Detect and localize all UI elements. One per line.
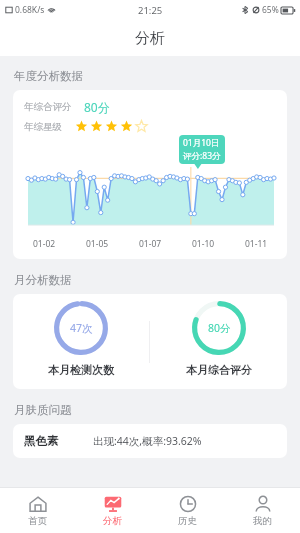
staticText: 黑色素 [24, 434, 59, 448]
staticText: 出现:44次,概率:93.62% [93, 434, 202, 448]
button[interactable]: 分析 [75, 488, 150, 533]
staticText: 月分析数据 [14, 273, 72, 287]
other: 历史 [179, 495, 197, 513]
staticText: 01-10 [192, 238, 215, 250]
staticText: 历史 [178, 515, 197, 527]
staticText: 评分:83分 [183, 150, 221, 162]
staticText: 01-07 [139, 238, 162, 250]
staticText: 21:25 [138, 4, 163, 17]
staticText: 80分 [84, 99, 110, 115]
other: 我的 [254, 495, 272, 513]
staticText: 月肤质问题 [14, 403, 72, 417]
staticText: 分析 [135, 29, 165, 48]
staticText: 01月10日 [183, 137, 220, 149]
other: 分析 [104, 495, 122, 513]
staticText: 年度分析数据 [14, 69, 83, 83]
staticText: 本月综合评分 [186, 363, 252, 377]
other: 首页 [29, 495, 47, 513]
button[interactable]: 历史 [150, 488, 225, 533]
staticText: 年综星级 [24, 121, 62, 133]
staticText: 80分 [208, 321, 231, 335]
staticText: 65% [262, 4, 279, 16]
button[interactable]: 首页 [0, 488, 75, 533]
button[interactable]: 黑色素 [13, 424, 287, 458]
staticText: 我的 [253, 515, 272, 527]
staticText: 年综合评分 [24, 101, 72, 113]
staticText: 首页 [28, 515, 47, 527]
staticText: 0.68K/s [15, 4, 45, 16]
button[interactable]: 80分 [150, 294, 287, 377]
staticText: 分析 [103, 515, 122, 527]
staticText: 01-05 [86, 238, 109, 250]
button[interactable]: 我的 [225, 488, 300, 533]
staticText: 01-11 [245, 238, 268, 250]
staticText: 本月检测次数 [48, 363, 114, 377]
staticText: 47次 [70, 321, 93, 335]
button[interactable]: 47次 [13, 294, 149, 377]
staticText: 01-02 [33, 238, 56, 250]
